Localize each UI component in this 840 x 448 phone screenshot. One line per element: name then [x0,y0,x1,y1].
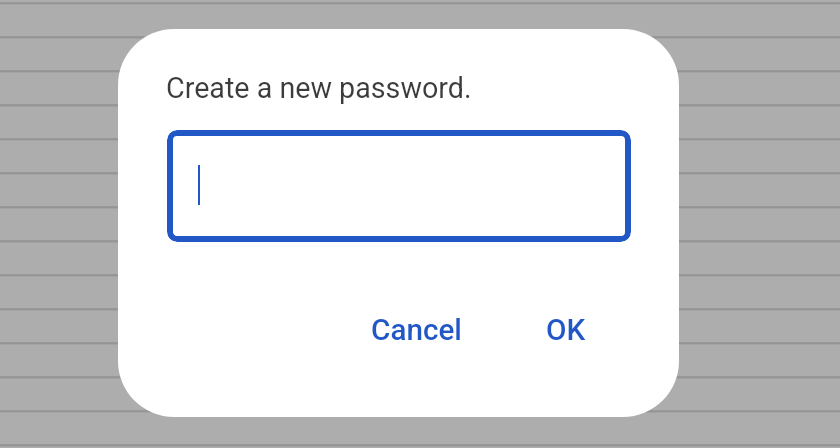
button[interactable]: Password entry field [167,130,631,242]
staticText: OK [546,312,586,347]
button[interactable]: Cancel [351,292,482,367]
button[interactable]: OK [526,292,606,367]
staticText: Create a new password. [166,71,472,105]
staticText: Cancel [371,312,462,347]
